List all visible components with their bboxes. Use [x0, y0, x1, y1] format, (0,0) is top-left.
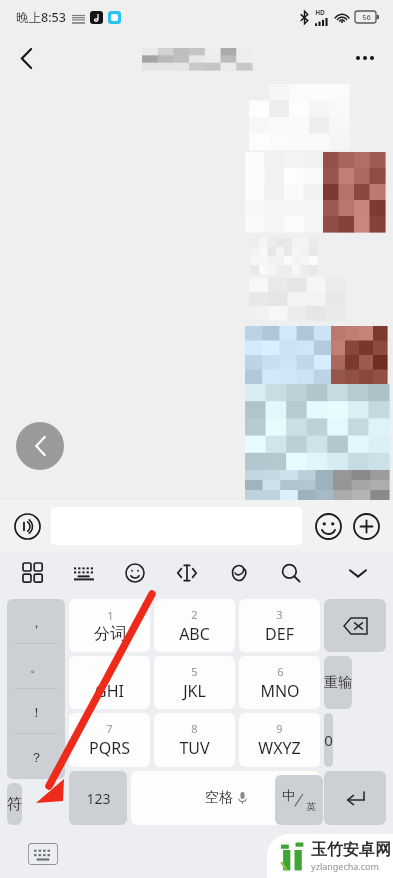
button[interactable]: Keyboard layout [67, 556, 101, 590]
button[interactable]: 空格 [131, 771, 320, 825]
button[interactable]: 4 [69, 656, 150, 709]
staticText: WXYZ [258, 737, 301, 759]
staticText: PQRS [89, 737, 130, 759]
staticText: MNO [260, 680, 300, 702]
staticText: ！ [30, 704, 43, 720]
staticText: ， [30, 614, 43, 630]
staticText: 。 [30, 659, 43, 675]
staticText: 123 [86, 789, 111, 808]
staticText: 7 [106, 721, 113, 736]
staticText: 5 [191, 664, 198, 679]
staticText: 晚上8:53 [16, 9, 66, 26]
button[interactable]: Hide keyboard [341, 556, 375, 590]
staticText: JKL [183, 680, 206, 702]
button[interactable]: 8 [154, 713, 235, 767]
button[interactable]: 符 [7, 783, 22, 825]
button[interactable]: 1 [69, 599, 150, 652]
button[interactable]: Switch keyboard [28, 843, 58, 865]
staticText: 重输 [324, 674, 352, 692]
button[interactable]: 。 [7, 644, 65, 689]
staticText: 空格 [205, 789, 233, 807]
button[interactable]: ？ [7, 734, 65, 779]
button[interactable]: 0 [324, 713, 333, 767]
button[interactable]: Enter [324, 771, 386, 825]
staticText: 3 [276, 607, 283, 622]
button[interactable]: Attach [222, 556, 256, 590]
staticText: 中 [282, 787, 295, 803]
staticText: 8 [191, 721, 198, 736]
staticText: DEF [265, 623, 294, 645]
staticText: 玉竹安卓网 [311, 840, 391, 860]
button[interactable]: Emoji [311, 509, 345, 543]
staticText: ？ [30, 749, 43, 765]
button[interactable]: 6 [239, 656, 320, 709]
staticText: yzlangecha.com [311, 860, 379, 872]
staticText: TUV [179, 737, 210, 759]
staticText: HD [315, 8, 325, 17]
staticText: 2 [191, 607, 198, 622]
button[interactable]: 2 [154, 599, 235, 652]
staticText: ABC [179, 623, 210, 645]
staticText: 0 [324, 730, 333, 750]
staticText: 6 [277, 664, 284, 679]
button[interactable]: 123 [69, 771, 127, 825]
staticText: 56 [362, 12, 371, 22]
button[interactable]: Scroll back [16, 422, 64, 470]
button[interactable]: ！ [7, 689, 65, 734]
button[interactable]: ， [7, 599, 65, 644]
staticText: 英 [306, 801, 316, 813]
button[interactable]: Add attachment [349, 509, 383, 543]
button[interactable]: 9 [239, 713, 320, 767]
button[interactable]: 3 [239, 599, 320, 652]
button[interactable]: Search [274, 556, 308, 590]
button[interactable]: Voice input [10, 509, 44, 543]
button[interactable]: 中 [275, 775, 323, 825]
staticText: 符 [7, 795, 22, 814]
button[interactable]: Back [4, 36, 48, 80]
button[interactable]: Backspace [324, 599, 386, 652]
button[interactable]: 7 [69, 713, 150, 767]
staticText: 分词 [94, 624, 126, 644]
staticText: 1 [107, 608, 114, 623]
button[interactable]: 重输 [324, 656, 352, 709]
staticText: 9 [276, 721, 283, 736]
button[interactable]: Text cursor [170, 556, 204, 590]
button[interactable]: Apps [16, 556, 50, 590]
staticText: 4 [106, 664, 113, 679]
button[interactable]: More options [343, 36, 387, 80]
button[interactable]: Emoji [118, 556, 152, 590]
staticText: GHI [95, 680, 124, 702]
button[interactable]: 5 [154, 656, 235, 709]
